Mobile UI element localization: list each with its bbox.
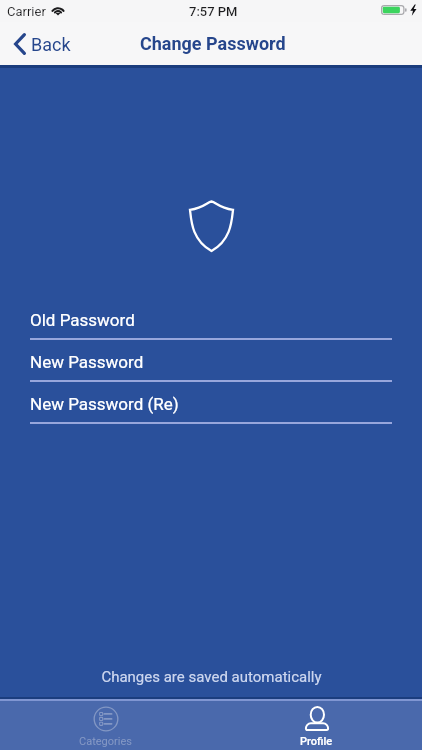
- button[interactable]: Profile: [211, 701, 422, 750]
- staticText: 7:57 PM: [189, 4, 238, 19]
- button[interactable]: Old Password: [30, 310, 392, 340]
- staticText: Profile: [300, 735, 333, 748]
- staticText: New Password: [30, 352, 144, 372]
- staticText: Categories: [79, 735, 132, 748]
- staticText: Carrier: [7, 4, 46, 19]
- staticText: Changes are saved automatically: [101, 668, 322, 686]
- button[interactable]: Back: [0, 28, 83, 60]
- staticText: Old Password: [30, 310, 135, 330]
- button[interactable]: New Password: [30, 352, 392, 382]
- staticText: New Password (Re): [30, 394, 179, 414]
- button[interactable]: New Password (Re): [30, 394, 392, 424]
- staticText: Change Password: [140, 33, 286, 54]
- button[interactable]: Categories: [0, 701, 211, 750]
- staticText: Back: [31, 34, 71, 55]
